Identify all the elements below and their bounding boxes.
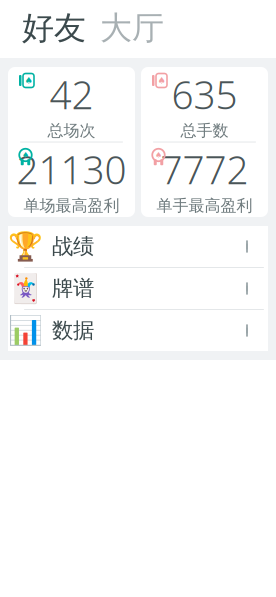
staticText: 数据 <box>52 317 94 344</box>
staticText: 单手最高盈利 <box>156 196 252 215</box>
staticText: 总手数 <box>180 121 228 140</box>
button[interactable]: 🏆 <box>8 226 268 267</box>
button[interactable]: 大厅 <box>100 8 164 48</box>
staticText: 好友 <box>22 8 86 48</box>
button[interactable]: 好友 <box>22 8 86 48</box>
staticText: 21130 <box>16 143 126 195</box>
button[interactable]: 📊 <box>8 310 268 351</box>
staticText: 总场次 <box>47 121 95 140</box>
staticText: ♠ <box>22 150 29 160</box>
staticText: 🏆 <box>7 230 42 262</box>
staticText: 42 <box>49 68 93 120</box>
staticText: 7772 <box>160 143 248 195</box>
staticText: 大厅 <box>100 8 164 48</box>
button[interactable]: 🃏 <box>8 268 268 309</box>
staticText: ♠ <box>24 75 32 86</box>
staticText: ♠ <box>155 150 162 160</box>
staticText: 牌谱 <box>52 275 94 302</box>
staticText: 635 <box>171 68 237 120</box>
staticText: 战绩 <box>52 233 94 260</box>
staticText: ♠ <box>157 75 165 86</box>
staticText: 📊 <box>7 314 42 346</box>
staticText: 🃏 <box>7 272 42 304</box>
staticText: 单场最高盈利 <box>23 196 119 215</box>
